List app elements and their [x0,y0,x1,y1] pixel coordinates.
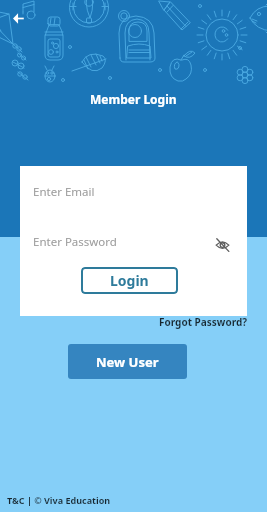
staticText: Enter Email [33,184,95,200]
staticText: Member Login [90,91,177,107]
button[interactable]: Back [4,4,32,32]
button[interactable]: New User [68,344,187,379]
staticText: Enter Password [33,234,117,250]
staticText: Login [110,271,149,290]
button[interactable]: Show password [210,232,234,256]
staticText: New User [96,353,159,371]
staticText: T&C | © Viva Education [7,494,111,506]
button[interactable]: T&C | © Viva Education [0,492,117,508]
button[interactable]: Forgot Password? [157,313,250,331]
button[interactable]: Login [81,267,178,294]
staticText: Forgot Password? [159,315,248,329]
